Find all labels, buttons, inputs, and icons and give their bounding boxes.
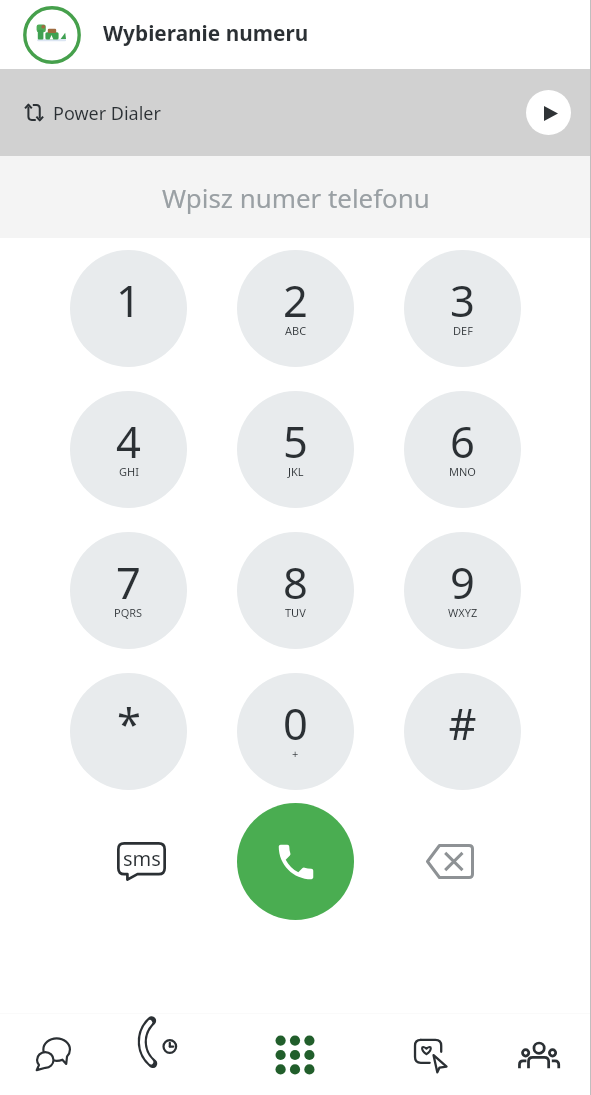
- button[interactable]: Account: [20, 3, 84, 67]
- staticText: DEF: [453, 323, 473, 338]
- staticText: GHI: [119, 464, 139, 479]
- staticText: Power Dialer: [53, 101, 161, 126]
- button[interactable]: Contacts: [486, 1014, 591, 1095]
- button[interactable]: #: [404, 673, 521, 790]
- staticText: 8: [283, 552, 308, 611]
- staticText: 3: [450, 270, 475, 329]
- button[interactable]: Start power dialer: [526, 90, 571, 135]
- staticText: TUV: [285, 605, 306, 620]
- button[interactable]: 6: [404, 391, 521, 508]
- button[interactable]: Wpisz numer telefonu: [0, 156, 591, 238]
- button[interactable]: 4: [70, 391, 187, 508]
- button[interactable]: Backspace: [404, 803, 521, 920]
- button[interactable]: 1: [70, 250, 187, 367]
- staticText: PQRS: [114, 605, 143, 620]
- button[interactable]: 2: [237, 250, 354, 367]
- button[interactable]: 0: [237, 673, 354, 790]
- button[interactable]: 8: [237, 532, 354, 649]
- staticText: 6: [450, 411, 475, 470]
- staticText: 4: [116, 411, 141, 470]
- staticText: #: [448, 693, 477, 752]
- staticText: 2: [283, 270, 308, 329]
- staticText: sms: [123, 845, 161, 872]
- staticText: +: [292, 746, 299, 761]
- button[interactable]: 5: [237, 391, 354, 508]
- staticText: ABC: [285, 323, 307, 338]
- button[interactable]: *: [70, 673, 187, 790]
- button[interactable]: Call: [237, 803, 354, 920]
- staticText: 7: [116, 552, 141, 611]
- staticText: 0: [283, 693, 308, 752]
- button[interactable]: Favourites: [375, 1014, 486, 1095]
- button[interactable]: 7: [70, 532, 187, 649]
- button[interactable]: 3: [404, 250, 521, 367]
- staticText: WXYZ: [448, 605, 478, 620]
- button[interactable]: Call history: [107, 1014, 215, 1095]
- staticText: Wpisz numer telefonu: [162, 180, 430, 215]
- staticText: 9: [450, 552, 475, 611]
- button[interactable]: Send SMS: [70, 803, 187, 920]
- staticText: 5: [283, 411, 308, 470]
- staticText: 1: [116, 270, 141, 329]
- button[interactable]: Keypad: [215, 1014, 375, 1095]
- staticText: *: [117, 693, 141, 752]
- staticText: Wybieranie numeru: [103, 19, 309, 47]
- button[interactable]: Power Dialer: [0, 69, 591, 156]
- staticText: JKL: [288, 464, 304, 479]
- staticText: MNO: [449, 464, 476, 479]
- button[interactable]: 9: [404, 532, 521, 649]
- button[interactable]: Messages: [0, 1014, 107, 1095]
